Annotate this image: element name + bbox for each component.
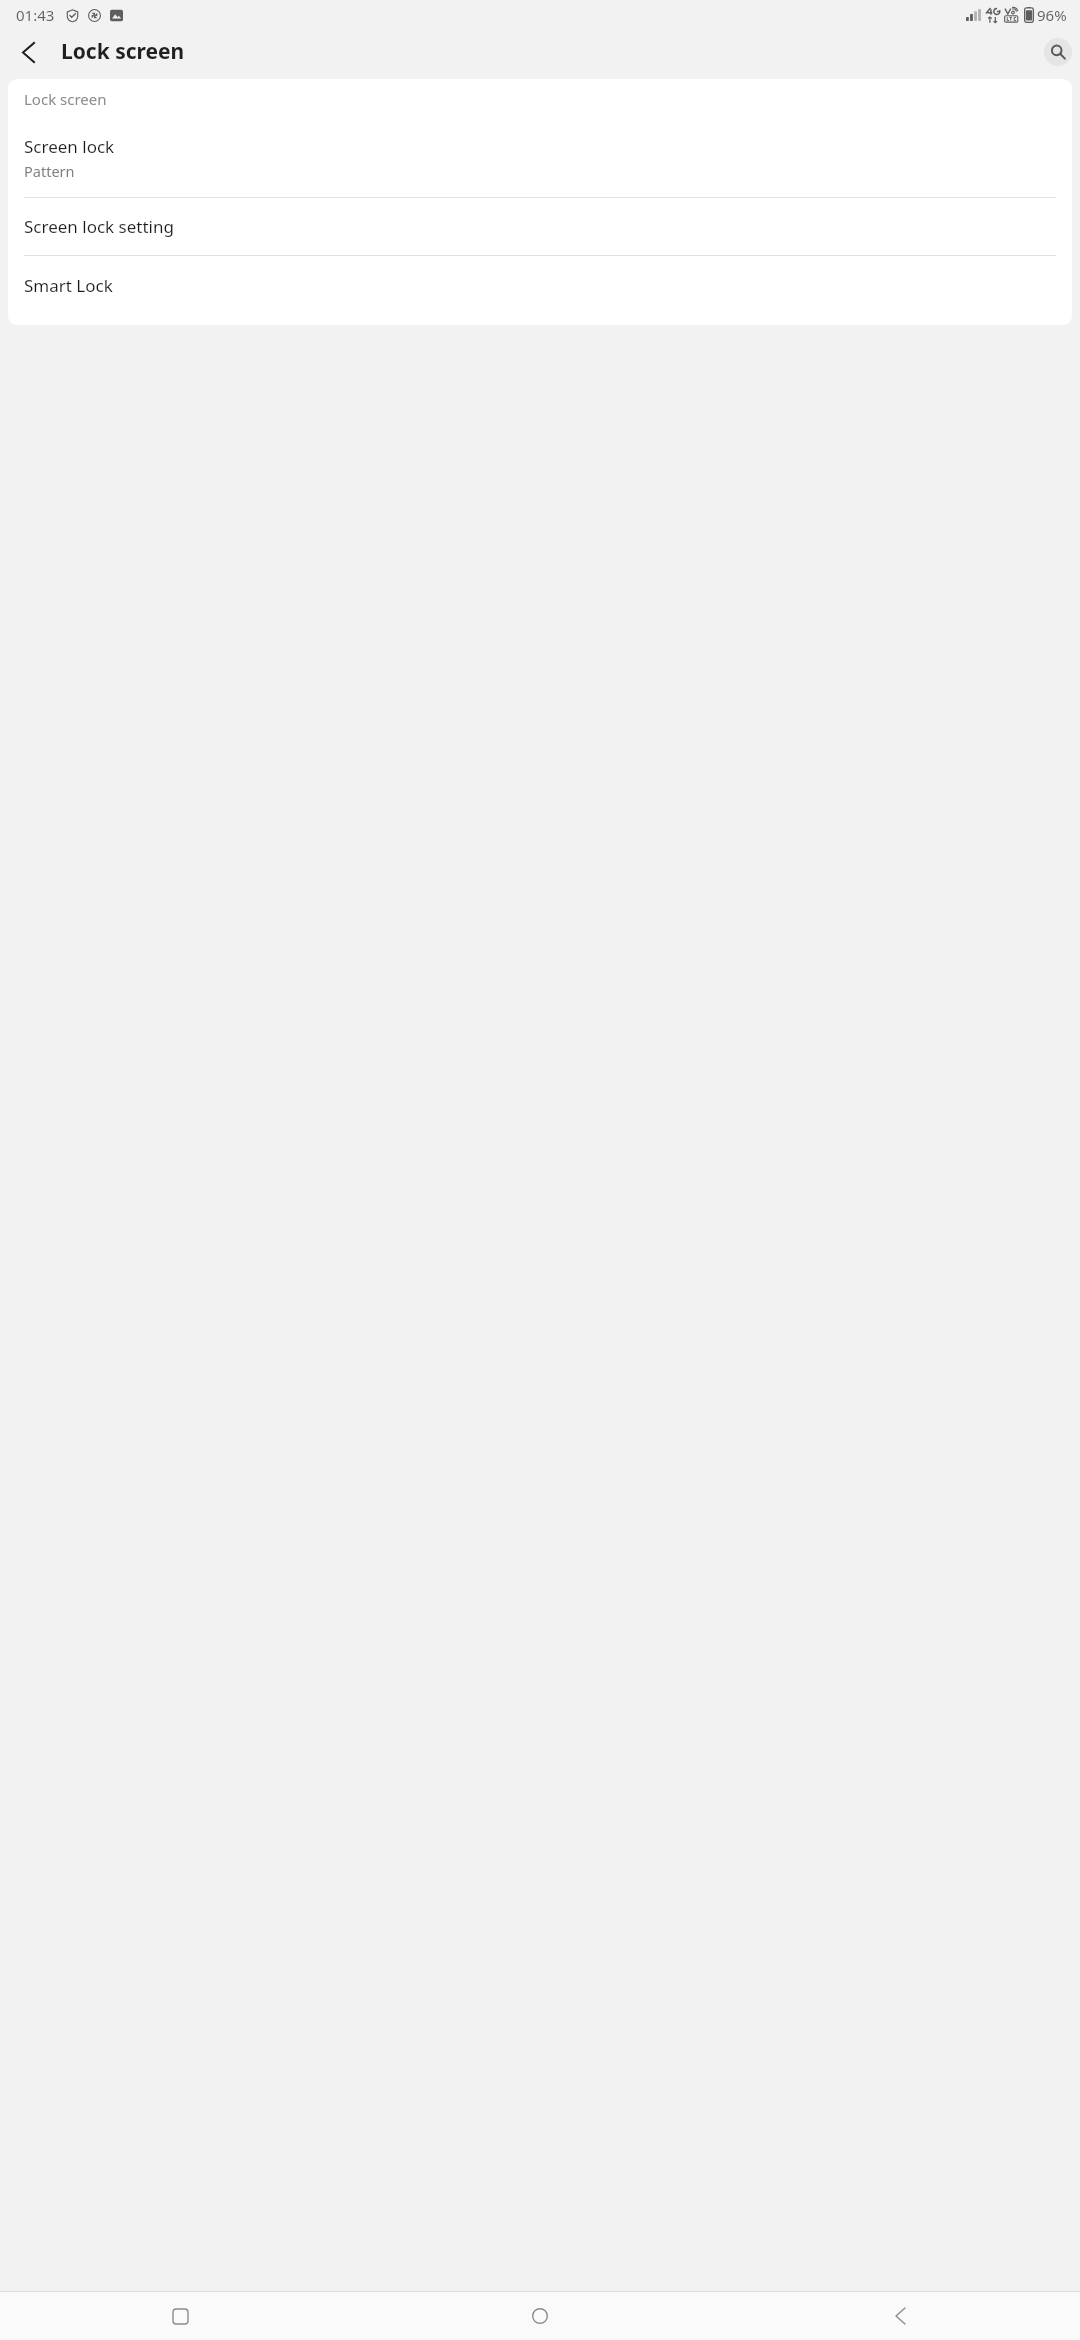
button[interactable]: Recent apps — [0, 2292, 360, 2340]
button[interactable]: Smart Lock — [8, 256, 1072, 314]
button[interactable]: Navigate up — [8, 32, 48, 72]
button[interactable]: Home — [360, 2292, 720, 2340]
staticText: Pattern — [24, 161, 75, 181]
staticText: Screen lock — [24, 135, 115, 158]
button[interactable]: Search — [1044, 38, 1072, 66]
staticText: 01:43 — [16, 5, 55, 25]
staticText: Lock screen — [61, 37, 185, 66]
button[interactable]: Screen lock — [8, 119, 1072, 197]
staticText: Smart Lock — [24, 274, 113, 297]
staticText: Screen lock setting — [24, 215, 174, 238]
button[interactable]: Screen lock setting — [8, 198, 1072, 255]
button[interactable]: Back — [720, 2292, 1080, 2340]
staticText: 96% — [1037, 5, 1067, 25]
staticText: Lock screen — [24, 89, 107, 109]
